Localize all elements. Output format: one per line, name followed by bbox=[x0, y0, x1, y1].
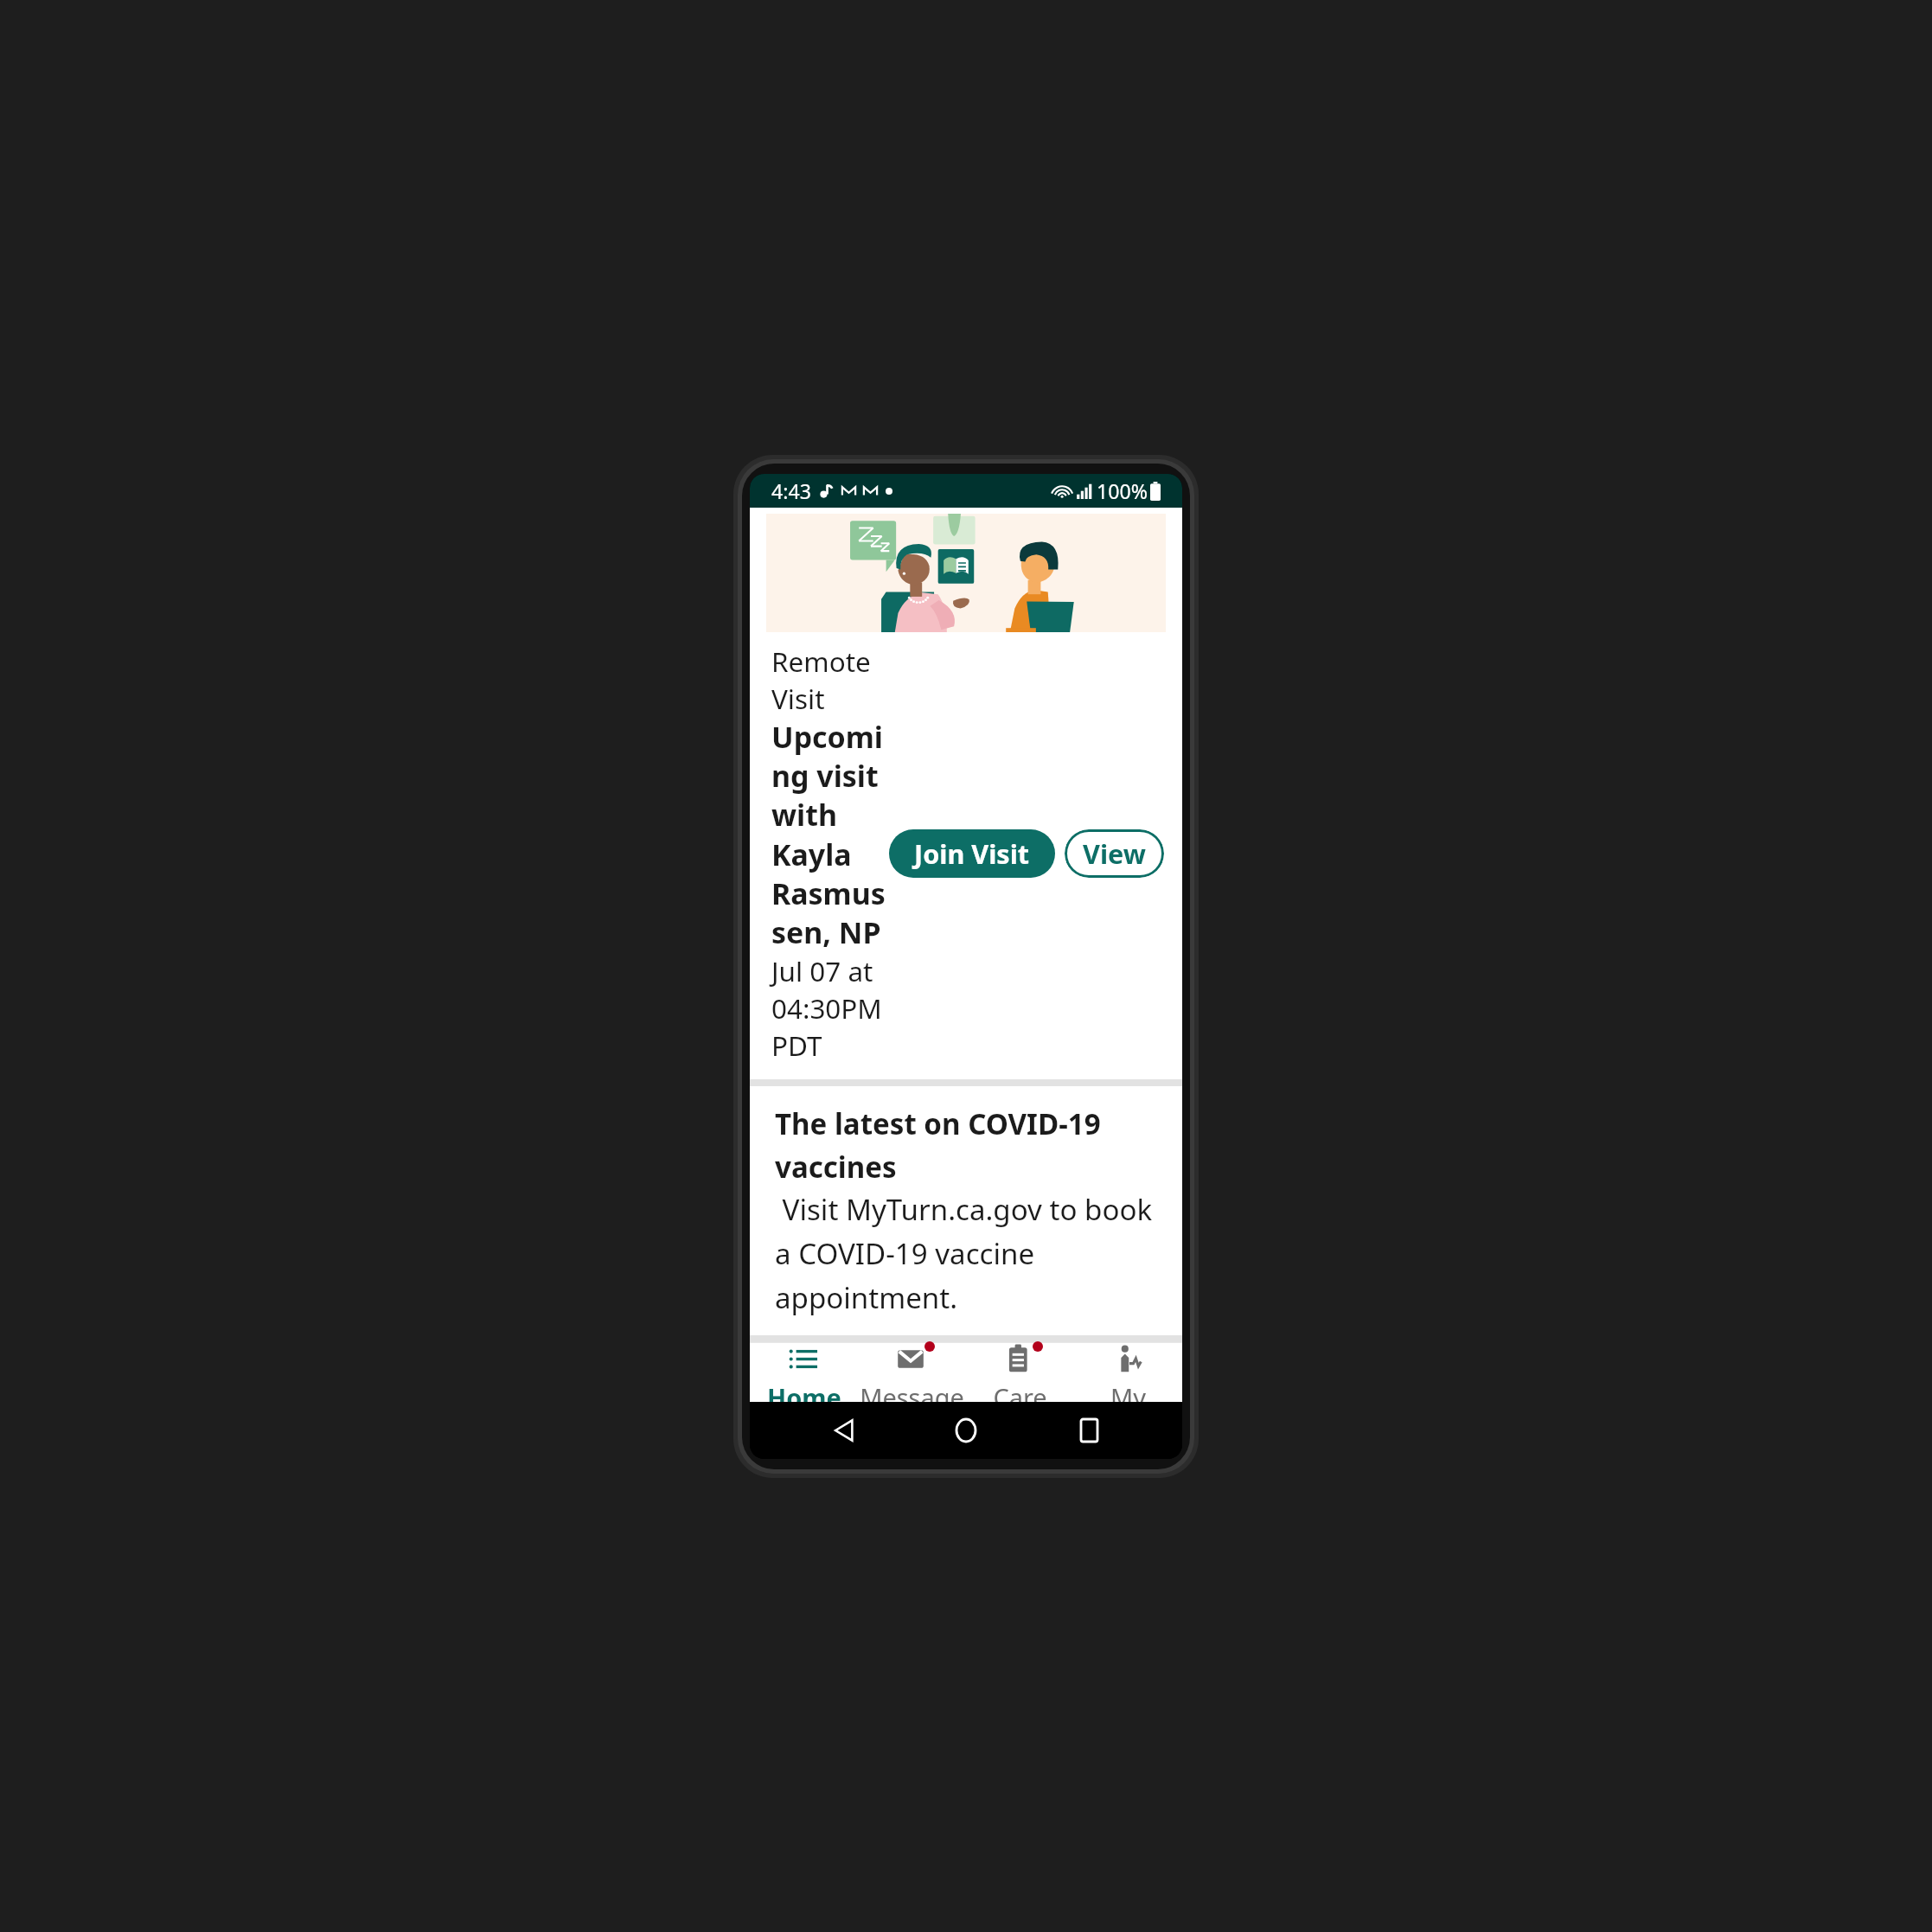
button[interactable]: Care Plan bbox=[966, 1343, 1074, 1402]
button[interactable]: Recent apps bbox=[1060, 1402, 1117, 1459]
staticText: Upcoming visit with bbox=[771, 717, 889, 835]
button[interactable]: Home bbox=[937, 1402, 995, 1459]
staticText: Visit MyTurn.ca.gov to book a COVID-19 v… bbox=[775, 1190, 1161, 1317]
button[interactable]: The latest on COVID-19 vaccines bbox=[750, 1086, 1182, 1335]
staticText: Jul 07 at 04:30PM PDT bbox=[771, 952, 889, 1064]
staticText: View bbox=[1083, 835, 1146, 872]
staticText: Join Visit bbox=[914, 835, 1030, 872]
staticText: The latest on COVID-19 vaccines bbox=[775, 1104, 1161, 1187]
button[interactable]: Messages bbox=[858, 1343, 966, 1402]
button[interactable]: Back bbox=[816, 1402, 873, 1459]
button[interactable]: My Health bbox=[1074, 1343, 1182, 1402]
button[interactable]: Home bbox=[750, 1343, 858, 1402]
staticText: Remote Visit bbox=[771, 643, 889, 717]
button[interactable]: Join Visit bbox=[889, 829, 1055, 878]
button[interactable]: View bbox=[1065, 829, 1164, 878]
staticText: My Health bbox=[1074, 1380, 1182, 1402]
staticText: 100% bbox=[1097, 477, 1148, 505]
staticText: Kayla Rasmussen, NP bbox=[771, 835, 889, 952]
staticText: 4:43 bbox=[771, 477, 811, 505]
staticText: Messages bbox=[858, 1380, 966, 1402]
staticText: Care Plan bbox=[966, 1380, 1074, 1402]
staticText: Home bbox=[767, 1380, 841, 1402]
